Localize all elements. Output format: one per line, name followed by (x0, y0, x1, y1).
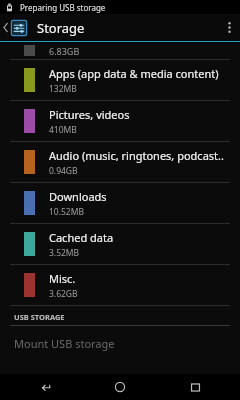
staticText: Apps (app data & media content) (49, 66, 219, 81)
button[interactable]: Downloads (0, 183, 240, 223)
button[interactable]: Pictures, videos (0, 101, 240, 141)
staticText: Misc. (49, 271, 76, 286)
button[interactable]: Audio (music, ringtones, podcast.. (0, 142, 240, 182)
staticText: 410MB (49, 124, 77, 136)
staticText: 132MB (49, 83, 77, 95)
button[interactable]: Navigate up (0, 14, 30, 41)
staticText: Storage (37, 19, 85, 37)
button[interactable]: Recent apps (165, 374, 225, 400)
staticText: Audio (music, ringtones, podcast.. (49, 148, 224, 163)
button[interactable]: Mount USB storage (0, 326, 240, 360)
staticText: 3.62GB (49, 288, 78, 300)
staticText: Downloads (49, 189, 107, 204)
staticText: USB STORAGE (14, 312, 65, 322)
button[interactable]: Back (15, 374, 75, 400)
staticText: 6.83GB (49, 45, 80, 57)
button[interactable]: Cached data (0, 224, 240, 264)
button[interactable]: 6.83GB (0, 42, 240, 59)
button[interactable]: Apps (app data & media content) (0, 60, 240, 100)
button[interactable]: Misc. (0, 265, 240, 305)
button[interactable]: Home (90, 374, 150, 400)
staticText: 3.52MB (49, 247, 80, 259)
button[interactable]: More options (218, 14, 240, 41)
staticText: Mount USB storage (14, 336, 115, 351)
staticText: 0.94GB (49, 165, 78, 177)
staticText: 10.52MB (49, 206, 84, 218)
staticText: Preparing USB storage (20, 2, 106, 13)
staticText: Pictures, videos (49, 107, 130, 122)
staticText: Cached data (49, 230, 114, 245)
